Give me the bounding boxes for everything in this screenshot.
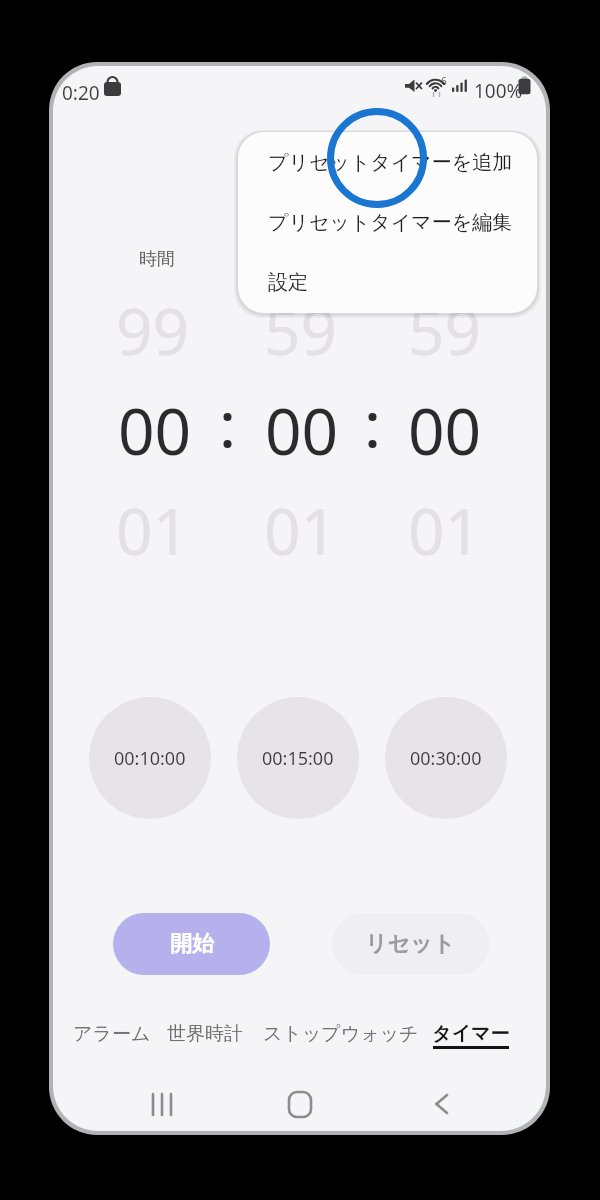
- button[interactable]: ストップウォッチ: [256, 1014, 426, 1054]
- button[interactable]: アラーム: [42, 1014, 182, 1054]
- staticText: 時間: [139, 248, 175, 271]
- staticText: アラーム: [73, 1022, 151, 1046]
- button[interactable]: 00:10:00: [89, 697, 211, 819]
- staticText: 00:10:00: [114, 746, 186, 771]
- button[interactable]: プリセットタイマーを編集: [238, 192, 537, 252]
- button[interactable]: 00:30:00: [385, 697, 507, 819]
- staticText: プリセットタイマーを追加: [268, 150, 513, 175]
- staticText: 設定: [268, 270, 308, 295]
- staticText: 6: [441, 74, 447, 88]
- staticText: 01: [264, 487, 338, 557]
- staticText: 00: [118, 387, 192, 457]
- button[interactable]: [143, 1084, 183, 1124]
- button[interactable]: [280, 1084, 320, 1124]
- button[interactable]: タイマー: [416, 1014, 526, 1054]
- staticText: 01: [116, 487, 190, 557]
- button[interactable]: 開始: [113, 913, 270, 975]
- staticText: 00:30:00: [410, 746, 482, 771]
- staticText: 00: [408, 387, 482, 457]
- staticText: プリセットタイマーを編集: [268, 210, 513, 235]
- staticText: タイマー: [432, 1022, 510, 1046]
- staticText: 開始: [170, 930, 214, 958]
- button[interactable]: リセット: [332, 913, 489, 975]
- button[interactable]: [422, 1084, 462, 1124]
- staticText: 0:20: [62, 80, 100, 106]
- staticText: 00:15:00: [262, 746, 334, 771]
- staticText: 59: [408, 287, 482, 357]
- staticText: 59: [264, 287, 338, 357]
- button[interactable]: 設定: [238, 252, 537, 313]
- staticText: 世界時計: [167, 1022, 243, 1046]
- staticText: 99: [116, 287, 190, 357]
- staticText: ストップウォッチ: [263, 1022, 419, 1046]
- staticText: 100%: [474, 78, 523, 104]
- staticText: 00: [265, 387, 339, 457]
- button[interactable]: 世界時計: [145, 1014, 265, 1054]
- button[interactable]: プリセットタイマーを追加: [238, 132, 537, 192]
- staticText: 01: [408, 487, 482, 557]
- staticText: リセット: [365, 930, 456, 958]
- button[interactable]: 00:15:00: [237, 697, 359, 819]
